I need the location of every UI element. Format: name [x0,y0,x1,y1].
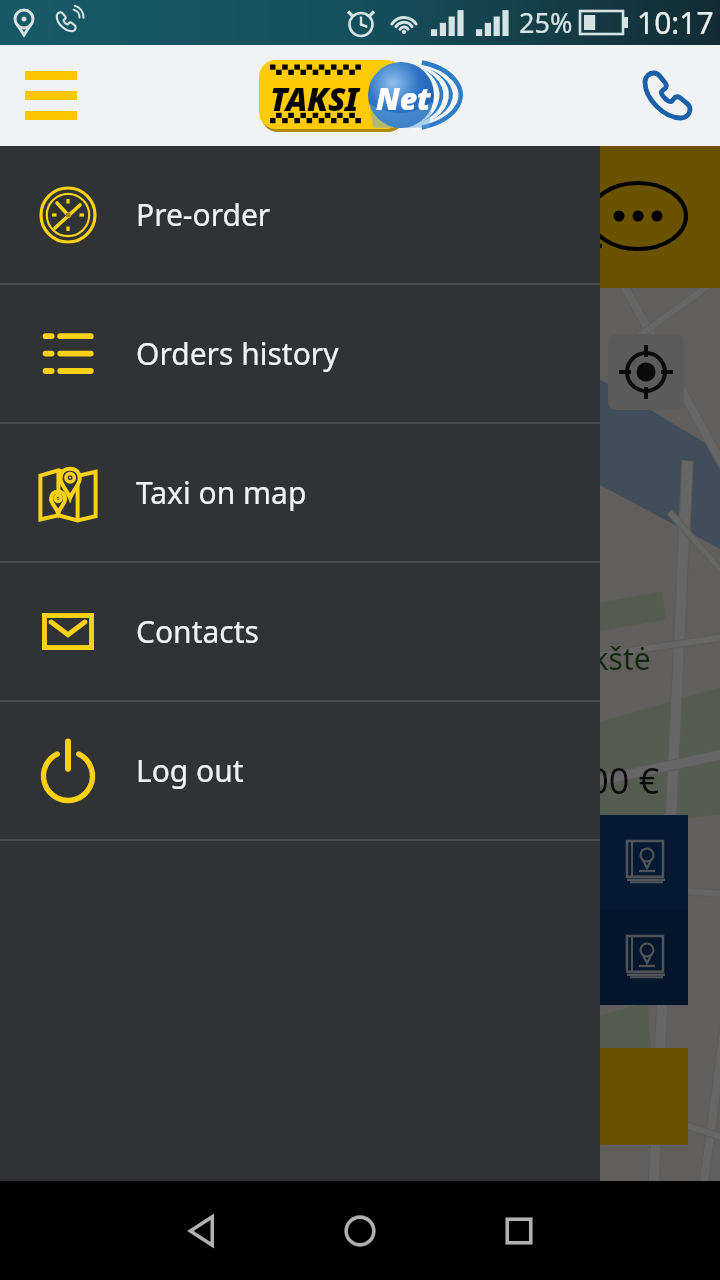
staticText: Contacts [136,611,259,652]
button[interactable]: Log out [0,702,600,839]
button[interactable]: Orders history [0,285,600,422]
staticText: 0.00 € [558,756,660,805]
staticText: 25% [519,4,573,41]
staticText: aikštė [568,638,651,679]
staticText: TAKSI [270,77,359,121]
staticText: Log out [136,750,244,791]
staticText: Orders history [136,333,339,374]
button[interactable]: Home [315,1186,405,1276]
button[interactable]: My location [608,334,684,410]
button[interactable]: Destination address [600,910,688,1005]
button[interactable]: Call [623,45,711,146]
button[interactable]: Pre-order [0,146,600,283]
button[interactable]: Pick-up address [600,815,688,910]
button[interactable]: Open navigation drawer [7,45,95,146]
staticText: Taxi on map [136,472,307,513]
button[interactable]: Recent apps [474,1186,564,1276]
button[interactable]: Contacts [0,563,600,700]
button[interactable]: Taxi on map [0,424,600,561]
staticText: Net [376,78,431,119]
button[interactable]: Back [158,1186,248,1276]
staticText: Pre-order [136,194,271,235]
staticText: 10:17 [637,2,714,43]
